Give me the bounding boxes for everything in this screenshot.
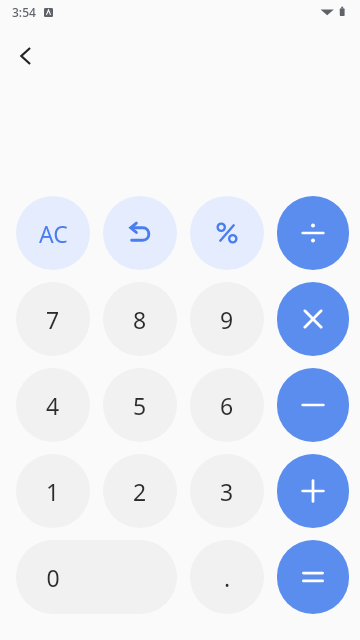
staticText: AC — [39, 218, 68, 249]
staticText: 7 — [46, 304, 60, 335]
button[interactable]: Undo — [103, 196, 177, 270]
button[interactable]: Multiply — [277, 282, 349, 356]
staticText: 8 — [133, 304, 147, 335]
staticText: 0 — [46, 562, 60, 593]
button[interactable]: 4 — [16, 368, 90, 442]
staticText: 3 — [220, 476, 234, 507]
button[interactable]: Equals — [277, 540, 349, 614]
button[interactable]: All clear — [16, 196, 90, 270]
staticText: 4 — [46, 390, 60, 421]
button[interactable]: 3 — [190, 454, 264, 528]
staticText: . — [224, 562, 231, 593]
button[interactable]: 9 — [190, 282, 264, 356]
button[interactable]: Back — [4, 34, 48, 78]
button[interactable]: Minus — [277, 368, 349, 442]
button[interactable]: 6 — [190, 368, 264, 442]
button[interactable]: 1 — [16, 454, 90, 528]
button[interactable]: 2 — [103, 454, 177, 528]
staticText: 9 — [220, 304, 234, 335]
staticText: 2 — [133, 476, 147, 507]
staticText: 5 — [133, 390, 147, 421]
button[interactable]: . — [190, 540, 264, 614]
button[interactable]: Divide — [277, 196, 349, 270]
staticText: 3:54 — [12, 4, 36, 20]
button[interactable]: 5 — [103, 368, 177, 442]
staticText: 6 — [220, 390, 234, 421]
button[interactable]: 8 — [103, 282, 177, 356]
staticText: 1 — [46, 476, 60, 507]
button[interactable]: 7 — [16, 282, 90, 356]
button[interactable]: Plus — [277, 454, 349, 528]
button[interactable]: 0 — [16, 540, 177, 614]
button[interactable]: Percent — [190, 196, 264, 270]
